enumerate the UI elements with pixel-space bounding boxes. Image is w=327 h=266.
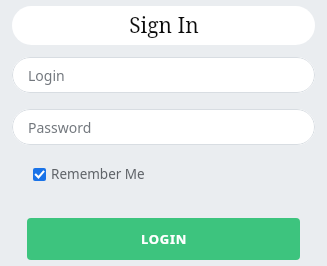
staticText: Remember Me (51, 165, 145, 183)
button[interactable]: Password (12, 109, 315, 145)
button[interactable]: LOGIN (27, 218, 300, 260)
button[interactable]: Login (12, 57, 315, 93)
staticText: Password (28, 118, 92, 137)
staticText: Sign In (129, 11, 199, 40)
button[interactable]: Remember Me (31, 163, 147, 185)
staticText: LOGIN (141, 230, 187, 248)
staticText: Login (28, 66, 65, 85)
